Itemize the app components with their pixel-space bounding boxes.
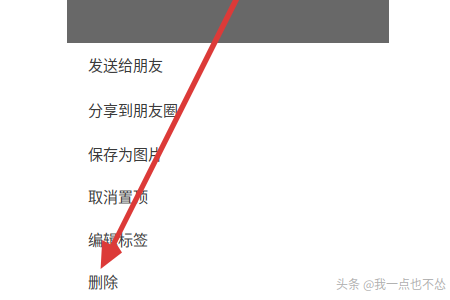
- button[interactable]: 分享到朋友圈: [88, 87, 388, 131]
- staticText: 发送给朋友: [88, 54, 163, 75]
- staticText: 分享到朋友圈: [88, 99, 178, 120]
- button[interactable]: 保存为图片: [88, 131, 388, 175]
- staticText: 取消置顶: [88, 185, 148, 207]
- staticText: 删除: [88, 270, 118, 292]
- staticText: 编辑标签: [88, 228, 148, 250]
- button[interactable]: 编辑标签: [88, 217, 388, 261]
- button[interactable]: 取消置顶: [88, 174, 388, 218]
- staticText: 头条 @我一点也不怂: [336, 275, 446, 292]
- button[interactable]: 删除: [88, 259, 388, 300]
- button[interactable]: 发送给朋友: [88, 42, 388, 86]
- staticText: 保存为图片: [88, 143, 163, 164]
